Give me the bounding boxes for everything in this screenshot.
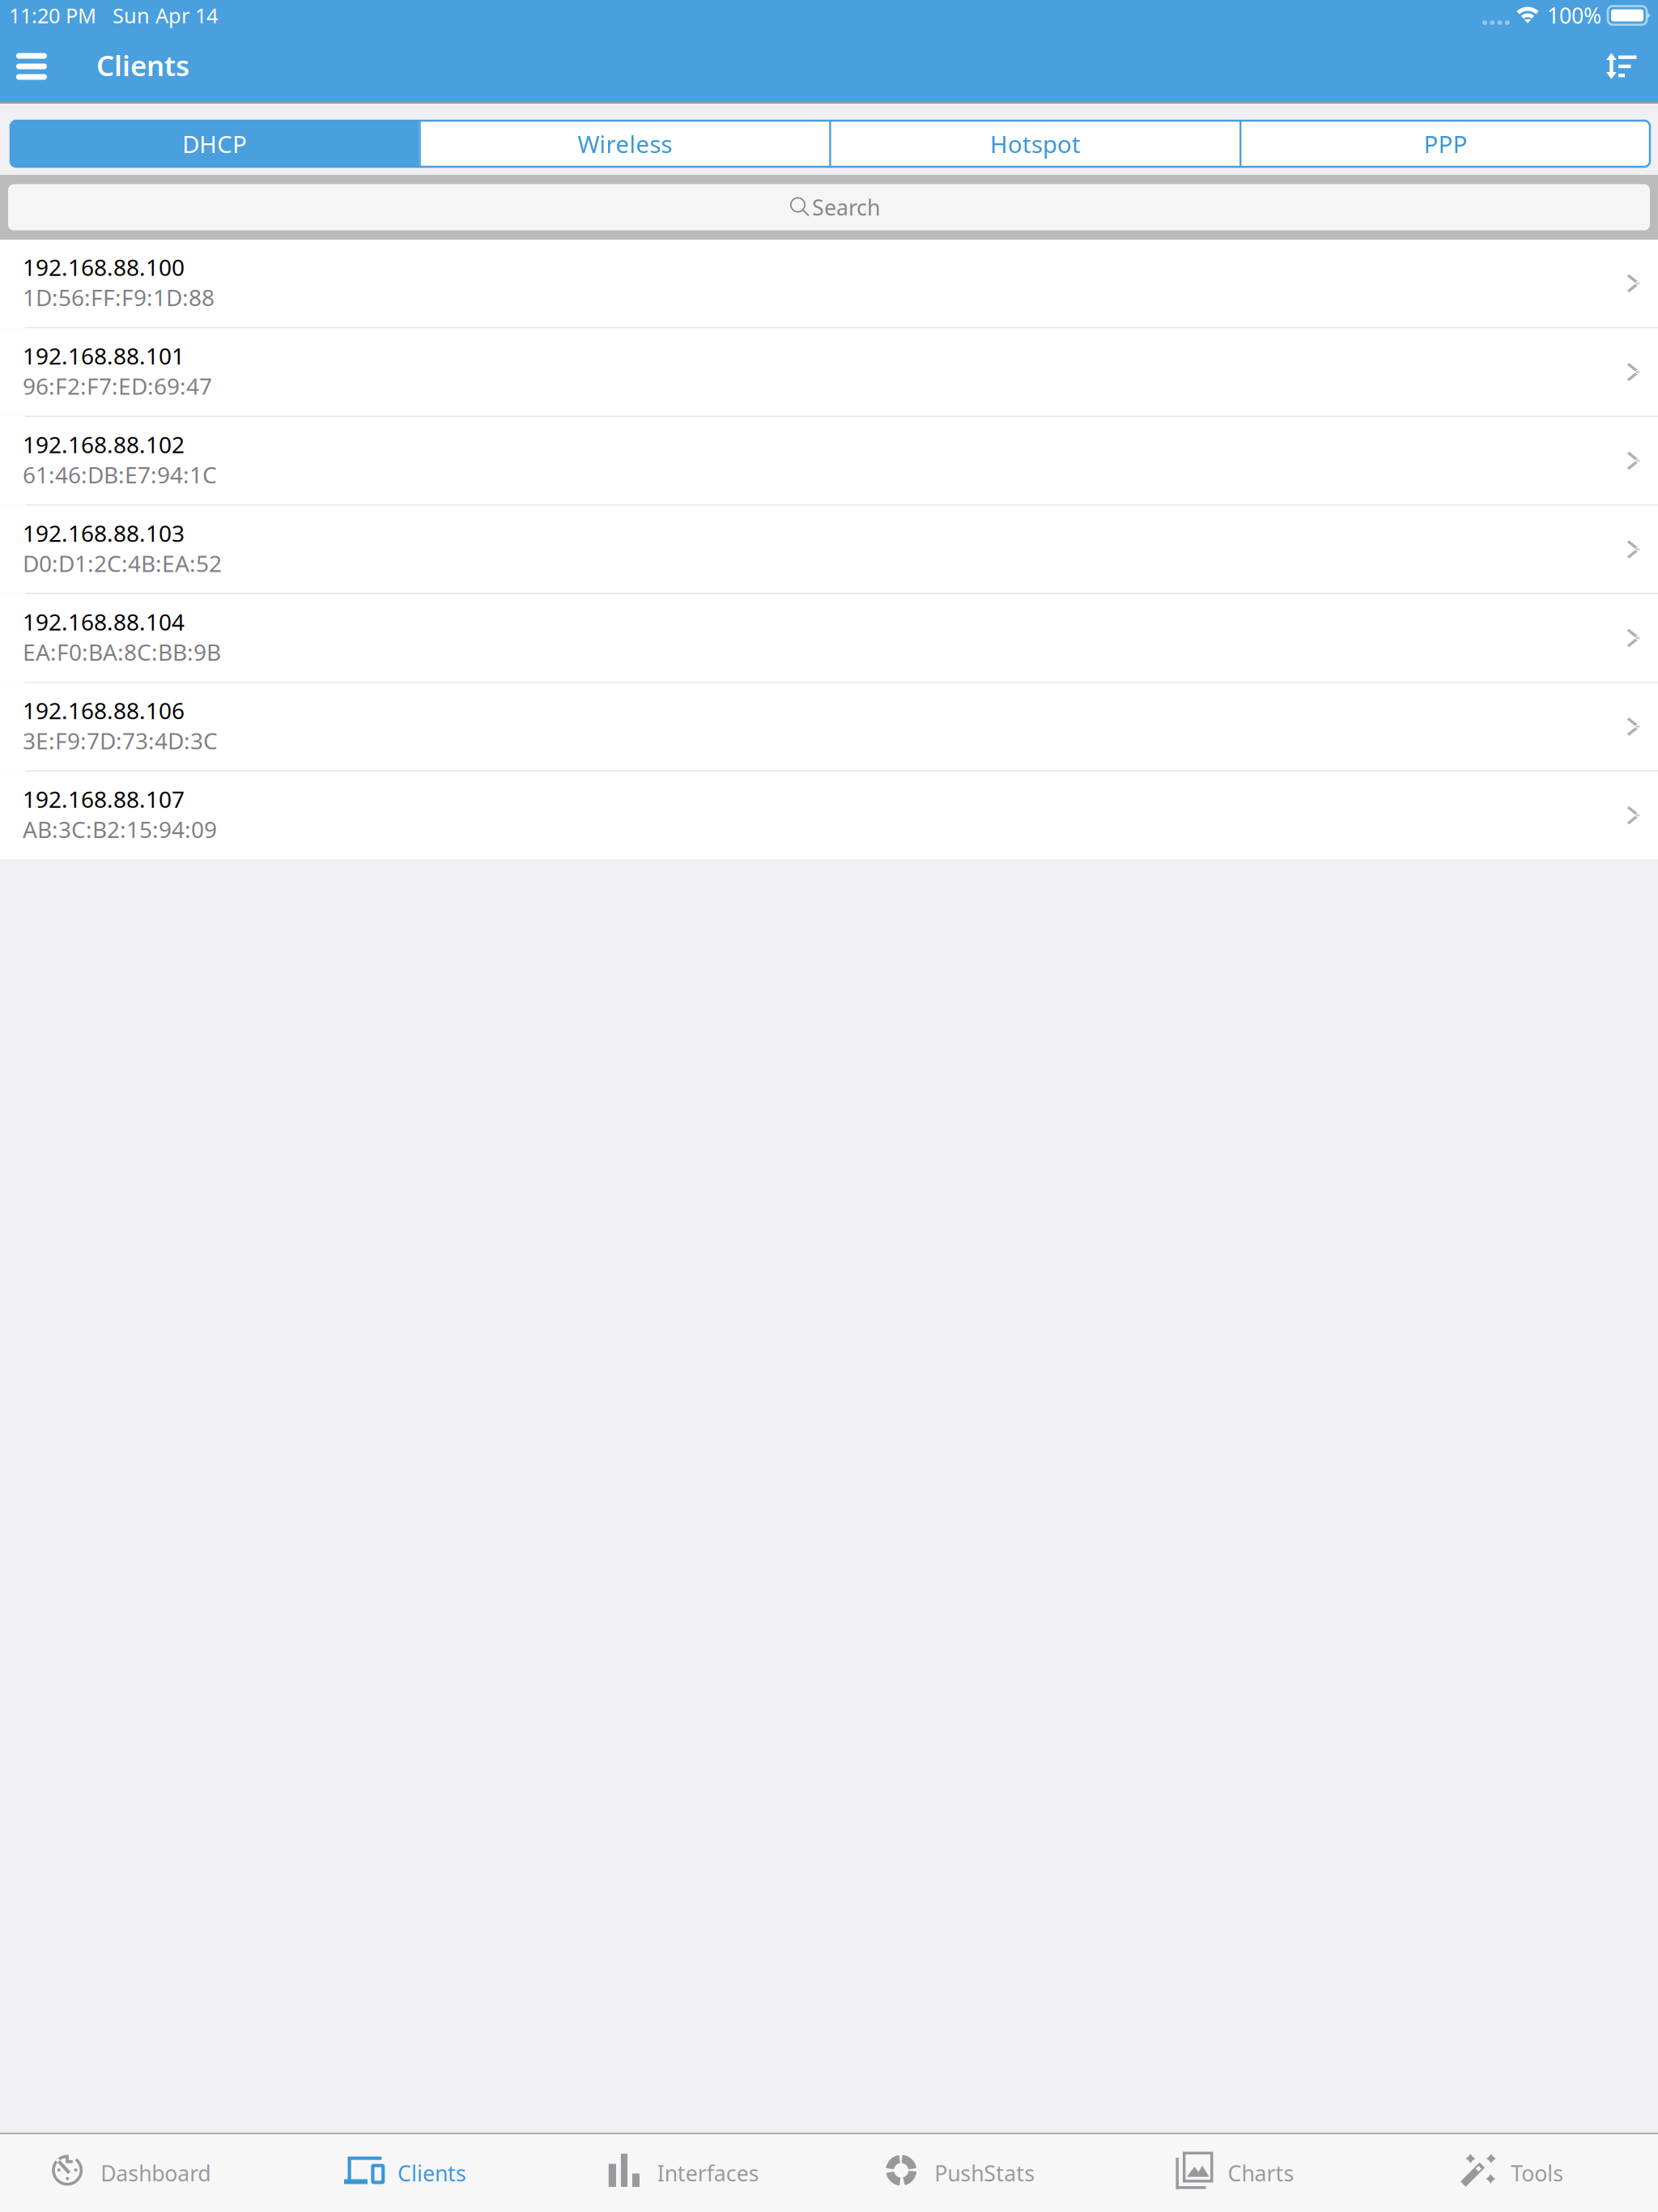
button[interactable]: Clients	[276, 2134, 553, 2212]
staticText: 3E:F9:7D:73:4D:3C	[23, 725, 218, 756]
staticText: Charts	[1228, 2159, 1294, 2187]
button[interactable]: Tools	[1382, 2134, 1658, 2212]
button[interactable]: 192.168.88.107	[0, 772, 1658, 859]
staticText: 1D:56:FF:F9:1D:88	[23, 282, 215, 312]
staticText: 192.168.88.104	[23, 607, 185, 637]
button[interactable]: Search	[0, 184, 1658, 230]
button[interactable]: Menu	[0, 35, 63, 98]
staticText: Sun Apr 14	[113, 2, 218, 29]
staticText: 61:46:DB:E7:94:1C	[23, 459, 217, 490]
staticText: D0:D1:2C:4B:EA:52	[23, 548, 222, 578]
staticText: DHCP	[182, 128, 247, 160]
button[interactable]: Wireless	[421, 121, 829, 167]
staticText: Clients	[397, 2159, 466, 2187]
button[interactable]: Dashboard	[0, 2134, 276, 2212]
staticText: PushStats	[934, 2159, 1035, 2187]
button[interactable]: Interfaces	[553, 2134, 829, 2212]
button[interactable]: Sort	[1585, 34, 1658, 98]
staticText: 192.168.88.103	[23, 518, 185, 548]
staticText: Tools	[1511, 2159, 1564, 2187]
staticText: 192.168.88.102	[23, 429, 185, 459]
staticText: Dashboard	[101, 2159, 211, 2187]
staticText: 192.168.88.101	[23, 341, 185, 371]
staticText: AB:3C:B2:15:94:09	[23, 814, 217, 844]
staticText: EA:F0:BA:8C:BB:9B	[23, 637, 221, 667]
button[interactable]: PushStats	[829, 2134, 1105, 2212]
staticText: Hotspot	[990, 128, 1081, 160]
staticText: 192.168.88.100	[23, 252, 185, 282]
button[interactable]: DHCP	[11, 121, 419, 167]
staticText: Search	[812, 193, 880, 222]
button[interactable]: 192.168.88.100	[0, 240, 1658, 327]
staticText: 100%	[1547, 1, 1601, 30]
button[interactable]: 192.168.88.103	[0, 506, 1658, 593]
staticText: 11:20 PM	[9, 2, 96, 29]
staticText: PPP	[1424, 128, 1468, 160]
button[interactable]: 192.168.88.102	[0, 417, 1658, 504]
staticText: 192.168.88.107	[23, 784, 185, 814]
button[interactable]: 192.168.88.106	[0, 683, 1658, 770]
staticText: 96:F2:F7:ED:69:47	[23, 371, 212, 401]
button[interactable]: Hotspot	[831, 121, 1240, 167]
button[interactable]: Charts	[1105, 2134, 1382, 2212]
staticText: Interfaces	[657, 2159, 759, 2187]
button[interactable]: 192.168.88.104	[0, 594, 1658, 682]
staticText: 192.168.88.106	[23, 695, 185, 725]
button[interactable]: PPP	[1242, 121, 1650, 167]
staticText: Clients	[96, 47, 189, 84]
staticText: Wireless	[578, 128, 672, 160]
button[interactable]: 192.168.88.101	[0, 328, 1658, 416]
